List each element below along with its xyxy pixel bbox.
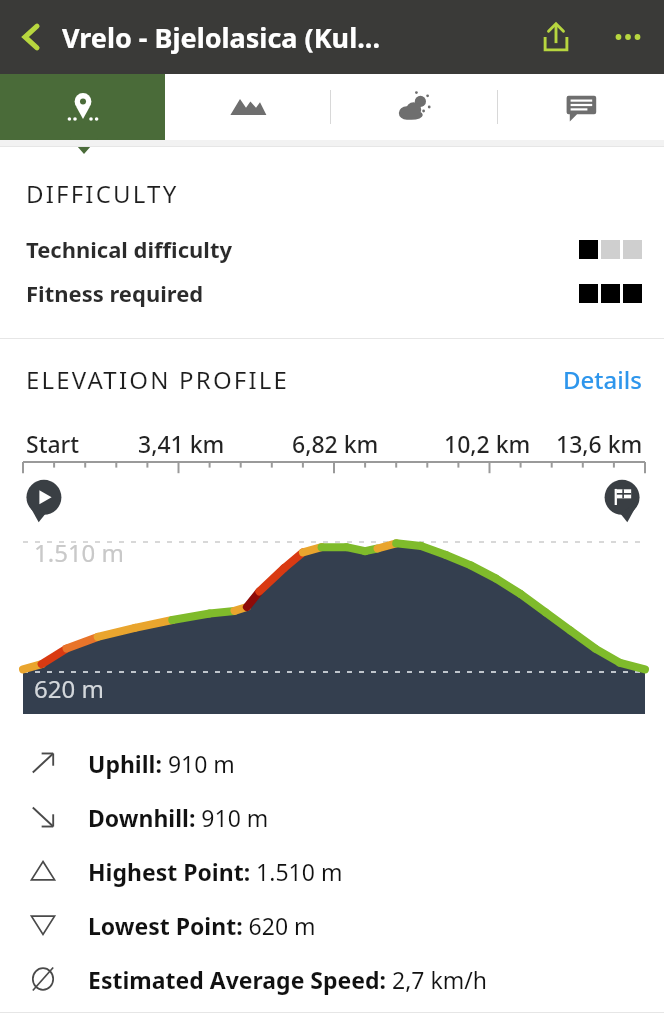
staticText: Uphill: 910 m <box>88 748 235 779</box>
staticText: Downhill: 910 m <box>88 802 269 833</box>
staticText: Lowest Point: 620 m <box>88 910 316 941</box>
button[interactable]: Elevation <box>165 74 330 140</box>
button[interactable]: Back <box>0 0 62 74</box>
staticText: 10,2 km <box>444 428 531 458</box>
staticText: 620 m <box>34 672 104 705</box>
staticText: 1.510 m <box>34 536 125 569</box>
staticText: Estimated Average Speed: 2,7 km/h <box>88 964 488 995</box>
staticText: 3,41 km <box>138 428 225 458</box>
staticText: Vrelo - Bjelolasica (Kul... <box>62 19 520 56</box>
button[interactable]: Comments <box>498 74 664 140</box>
button[interactable]: Share <box>520 0 592 74</box>
staticText: Fitness required <box>26 278 204 308</box>
staticText: 13,6 km <box>556 428 643 458</box>
button[interactable]: Details <box>563 363 642 396</box>
staticText: Details <box>563 363 642 396</box>
staticText: Technical difficulty <box>26 234 232 264</box>
staticText: ELEVATION PROFILE <box>26 363 290 396</box>
button[interactable]: Weather <box>331 74 497 140</box>
button[interactable]: Route <box>0 74 165 140</box>
staticText: Highest Point: 1.510 m <box>88 856 343 887</box>
button[interactable]: More options <box>592 0 664 74</box>
staticText: DIFFICULTY <box>26 177 179 210</box>
staticText: 6,82 km <box>292 428 379 458</box>
staticText: Start <box>26 428 80 458</box>
